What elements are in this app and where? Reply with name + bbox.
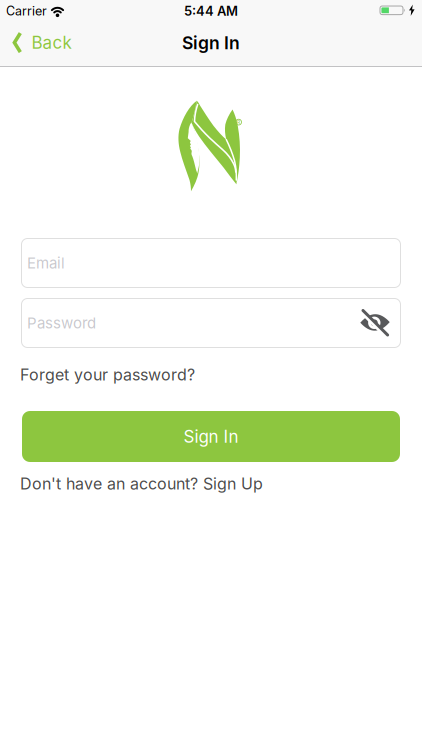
staticText: Sign In bbox=[183, 426, 238, 447]
button[interactable]: Forget your password? bbox=[20, 365, 195, 384]
staticText: Don't have an account? Sign Up bbox=[20, 474, 263, 493]
staticText: Password bbox=[27, 314, 96, 332]
button[interactable]: Sign In bbox=[22, 411, 400, 462]
staticText: Back bbox=[31, 32, 71, 53]
button[interactable]: Show password bbox=[360, 310, 390, 335]
staticText: Sign In bbox=[182, 32, 240, 54]
staticText: 5:44 AM bbox=[184, 3, 238, 19]
staticText: Carrier bbox=[6, 3, 47, 18]
button[interactable]: Don't have an account? Sign Up bbox=[20, 474, 263, 493]
staticText: Forget your password? bbox=[20, 365, 195, 384]
button[interactable]: Back bbox=[13, 31, 71, 53]
staticText: R bbox=[237, 119, 240, 125]
staticText: Email bbox=[27, 254, 65, 272]
